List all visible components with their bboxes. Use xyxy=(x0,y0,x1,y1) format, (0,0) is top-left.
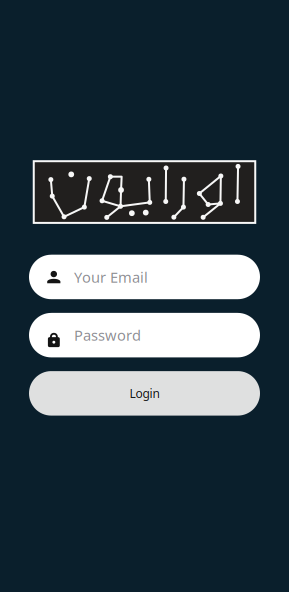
button[interactable]: Your Email xyxy=(29,255,260,299)
staticText: Password xyxy=(74,325,141,345)
staticText: Login xyxy=(129,385,159,401)
button[interactable]: Login xyxy=(29,371,260,416)
staticText: Your Email xyxy=(74,267,148,287)
button[interactable]: Password xyxy=(29,313,260,357)
